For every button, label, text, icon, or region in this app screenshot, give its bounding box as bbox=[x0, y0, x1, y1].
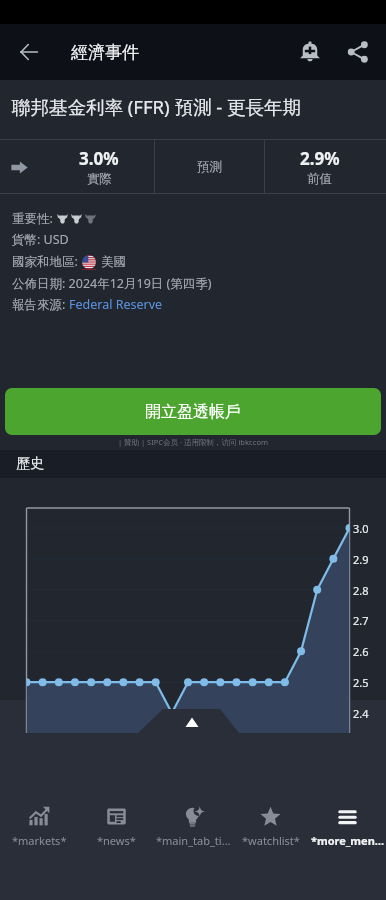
button[interactable]: *more_men… bbox=[309, 780, 386, 850]
staticText: *markets* bbox=[12, 833, 67, 848]
button[interactable]: Share bbox=[334, 28, 382, 76]
staticText: 前值 bbox=[307, 171, 332, 187]
staticText: 報告來源: bbox=[12, 296, 69, 313]
staticText: 聯邦基金利率 (FFR) 預測 - 更長年期 bbox=[12, 94, 302, 119]
staticText: 2.9 bbox=[353, 552, 369, 567]
staticText: | 贊助 | SIPC会员 · 适用限制，访问 ibkr.com bbox=[0, 437, 386, 447]
button[interactable]: *main_tab_ti… bbox=[155, 780, 232, 850]
staticText: 2.4 bbox=[353, 706, 369, 721]
button[interactable]: *news* bbox=[78, 780, 155, 850]
staticText: 公佈日期: 2024年12月19日 (第四季) bbox=[12, 275, 212, 292]
staticText: 2.5 bbox=[353, 675, 369, 690]
staticText: 歷史 bbox=[16, 455, 44, 473]
staticText: 開立盈透帳戶 bbox=[145, 402, 241, 422]
button[interactable]: Back bbox=[5, 28, 53, 76]
button[interactable]: Federal Reserve bbox=[69, 296, 163, 313]
staticText: *main_tab_ti… bbox=[156, 833, 231, 848]
staticText: 預測 bbox=[197, 159, 222, 175]
staticText: 美國 bbox=[101, 254, 126, 270]
staticText: 2.6 bbox=[353, 644, 369, 659]
staticText: 國家和地區: bbox=[12, 253, 82, 270]
button[interactable]: *markets* bbox=[0, 780, 78, 850]
staticText: 重要性: bbox=[12, 210, 57, 227]
button[interactable]: Add alert bbox=[286, 28, 334, 76]
staticText: 2.8 bbox=[353, 583, 369, 598]
staticText: 貨幣: USD bbox=[12, 231, 69, 248]
staticText: 2.9% bbox=[300, 147, 340, 170]
button[interactable]: *watchlist* bbox=[232, 780, 309, 850]
staticText: *news* bbox=[97, 833, 136, 848]
staticText: *more_men… bbox=[311, 833, 385, 848]
button[interactable]: 開立盈透帳戶 bbox=[5, 388, 381, 435]
staticText: 2.7 bbox=[353, 613, 369, 628]
staticText: 經濟事件 bbox=[71, 42, 139, 63]
staticText: 3.0 bbox=[353, 521, 369, 536]
staticText: 實際 bbox=[87, 171, 112, 187]
staticText: *watchlist* bbox=[242, 833, 300, 848]
staticText: 3.0% bbox=[79, 147, 119, 170]
